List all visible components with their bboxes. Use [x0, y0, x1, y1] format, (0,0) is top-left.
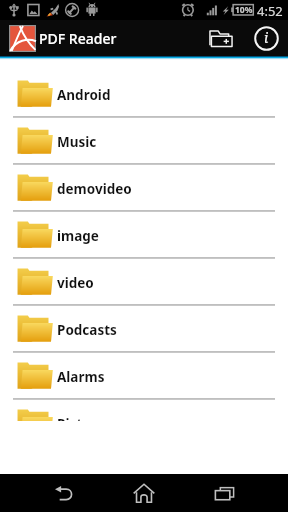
staticText: Pictures [57, 415, 112, 421]
button[interactable]: Info [246, 20, 286, 56]
button[interactable]: Home [120, 474, 168, 512]
staticText: Music [57, 133, 97, 151]
staticText: video [57, 274, 94, 292]
staticText: i [264, 28, 269, 47]
staticText: 10% [235, 4, 253, 16]
button[interactable]: Podcasts [0, 306, 288, 353]
staticText: 4:52 [257, 2, 283, 20]
staticText: Android [57, 86, 111, 104]
button[interactable]: Recents [200, 474, 248, 512]
staticText: image [57, 227, 99, 245]
staticText: PDF Reader [39, 29, 117, 48]
button[interactable]: New folder [201, 20, 241, 56]
button[interactable]: Back [40, 474, 88, 512]
button[interactable]: Pictures [0, 400, 288, 421]
staticText: demovideo [57, 180, 132, 198]
staticText: Podcasts [57, 321, 117, 339]
staticText: Alarms [57, 368, 105, 386]
button[interactable]: demovideo [0, 165, 288, 212]
button[interactable]: Music [0, 118, 288, 165]
button[interactable]: Android [0, 71, 288, 118]
button[interactable]: video [0, 259, 288, 306]
button[interactable]: image [0, 212, 288, 259]
button[interactable]: Alarms [0, 353, 288, 400]
